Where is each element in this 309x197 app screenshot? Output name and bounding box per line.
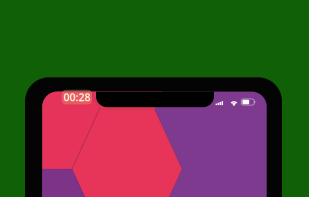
staticText: 00:28 (63, 90, 90, 104)
